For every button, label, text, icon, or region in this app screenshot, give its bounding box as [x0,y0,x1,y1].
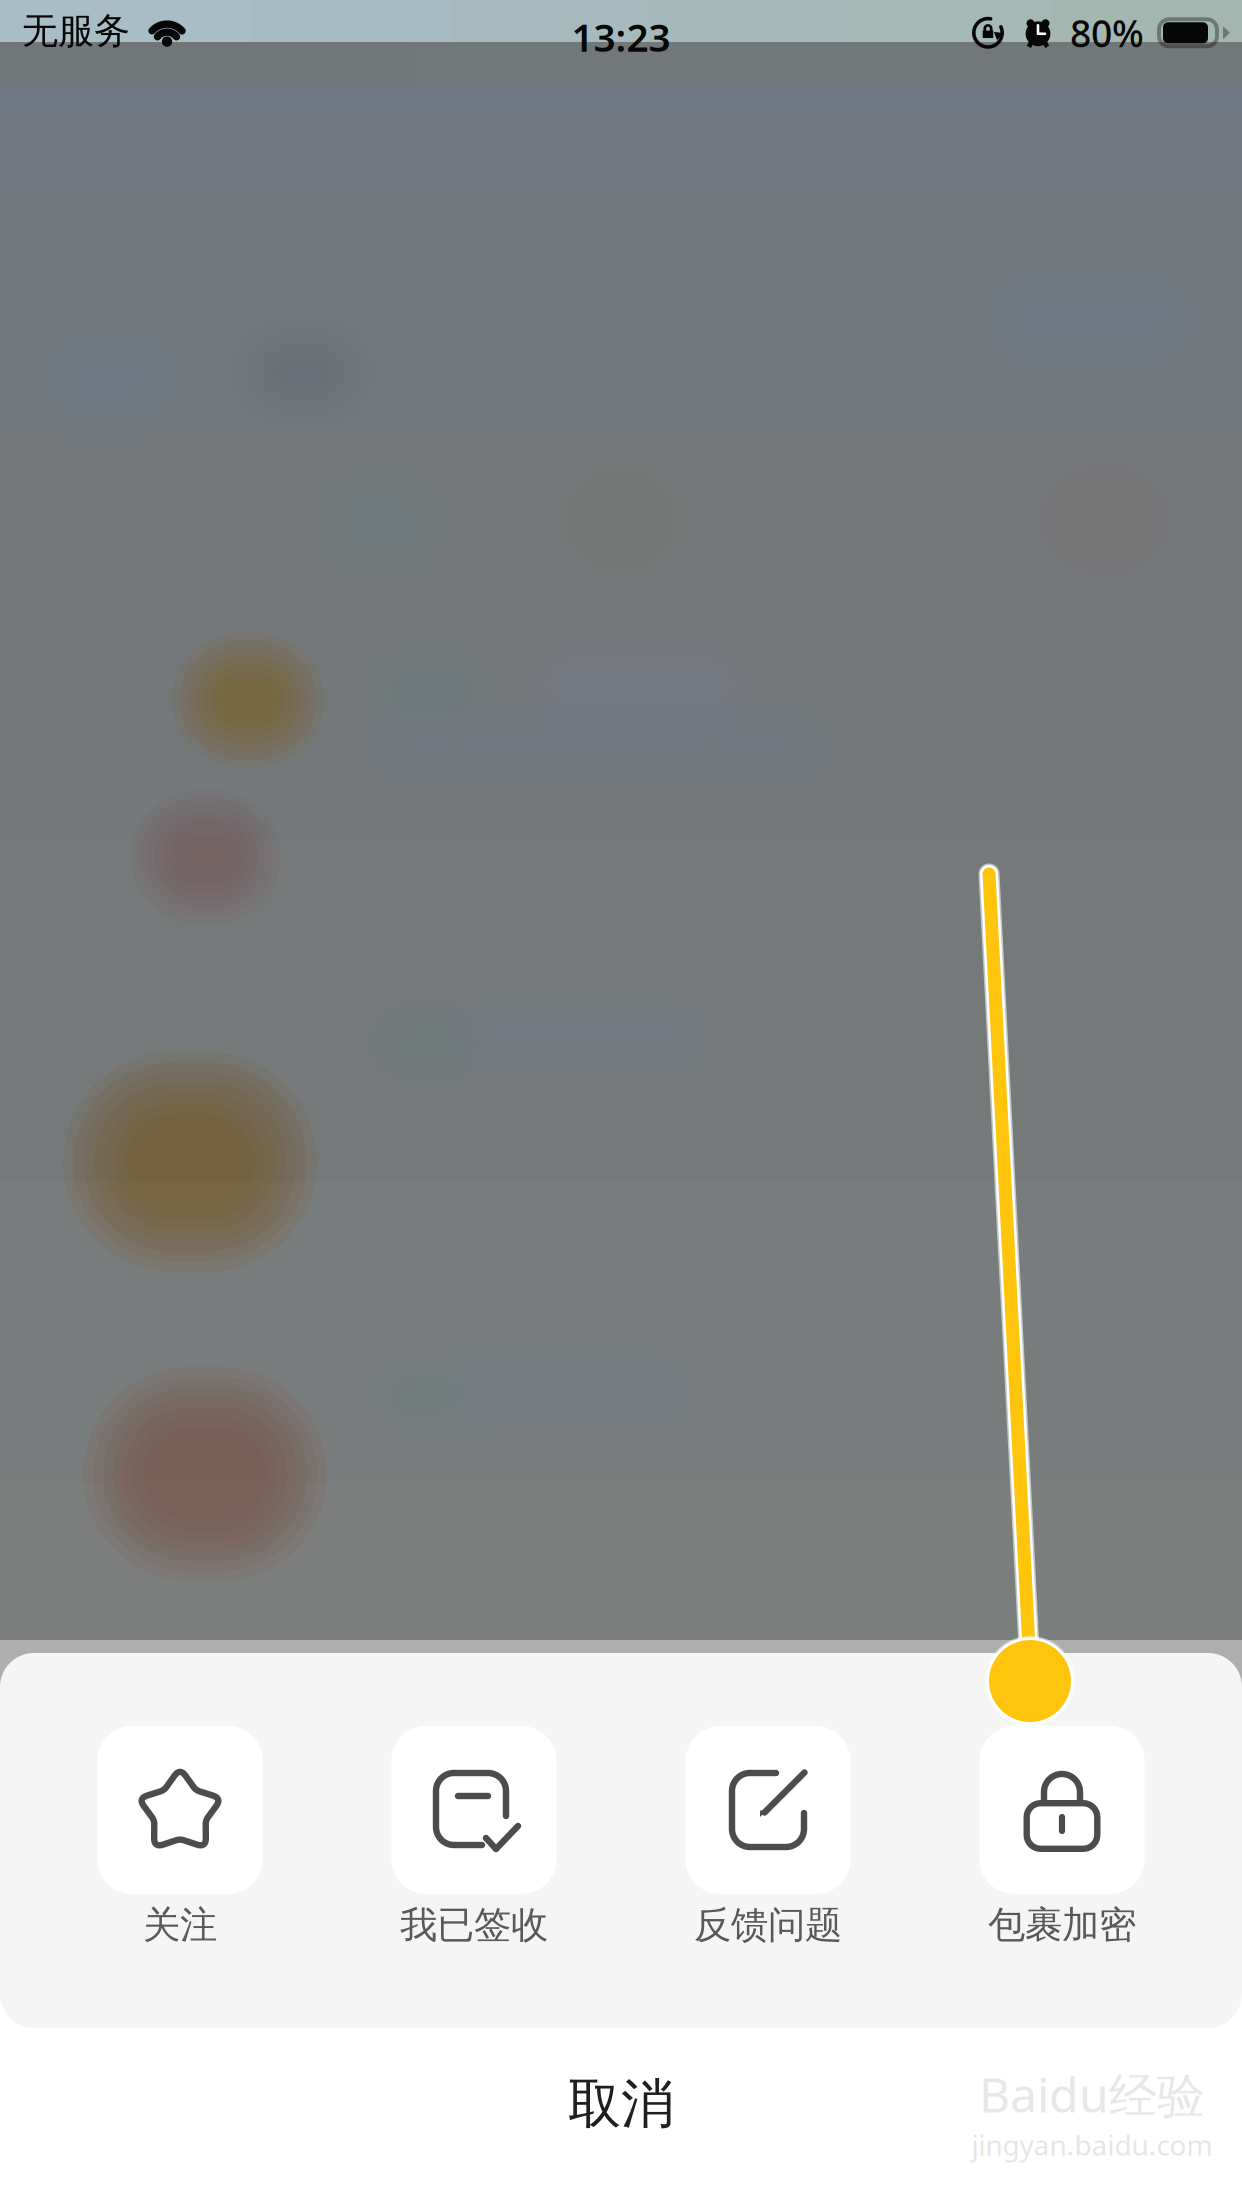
staticText: Baidu经验 [979,2062,1205,2126]
staticText: jingyan.baidu.com [971,2126,1212,2163]
button[interactable]: 我已签收 [369,1726,578,1951]
staticText: 无服务 [22,9,130,53]
button[interactable]: 关注 [75,1726,284,1951]
button[interactable]: 取消 [0,2028,1242,2208]
staticText: 我已签收 [400,1902,548,1948]
button[interactable]: 关闭 [0,42,1242,1640]
staticText: 包裹加密 [988,1902,1136,1948]
staticText: 80% [1070,8,1144,58]
staticText: 取消 [568,2071,674,2137]
button[interactable]: 包裹加密 [957,1726,1166,1951]
staticText: 关注 [143,1902,217,1948]
button[interactable]: 反馈问题 [663,1726,872,1951]
staticText: 13:23 [571,11,670,62]
staticText: 反馈问题 [694,1902,842,1948]
